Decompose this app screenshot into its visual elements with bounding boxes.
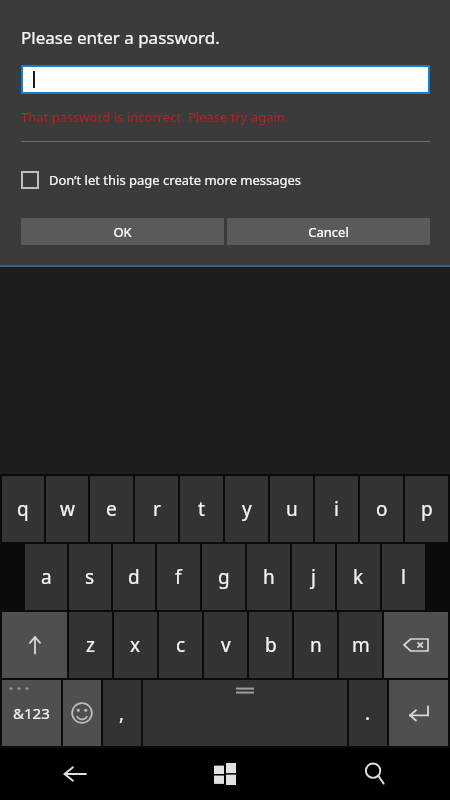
staticText: g [218,564,230,590]
button[interactable]: j [292,544,335,610]
button[interactable]: s [69,544,111,610]
staticText: p [421,496,433,522]
staticText: That password is incorrect. Please try a… [21,108,289,126]
button[interactable]: i [315,476,358,542]
staticText: OK [113,223,132,241]
button[interactable]: c [159,612,202,678]
staticText: k [353,564,364,590]
button[interactable]: Shift [2,612,67,678]
staticText: s [85,564,95,590]
button[interactable]: Back [0,748,150,800]
staticText: . [365,700,371,726]
staticText: u [286,496,298,522]
staticText: y [242,496,252,522]
button[interactable]: d [113,544,155,610]
button[interactable]: w [46,476,88,542]
staticText: r [153,496,161,522]
button[interactable]: , [103,680,141,746]
button[interactable]: Password field [21,65,430,94]
staticText: q [17,496,29,522]
button[interactable]: f [157,544,200,610]
staticText: Please enter a password. [21,26,220,49]
staticText: , [119,700,125,726]
button[interactable]: z [69,612,112,678]
staticText: a [41,564,52,590]
button[interactable]: h [247,544,290,610]
button[interactable]: v [204,612,247,678]
button[interactable]: Space [143,680,347,746]
staticText: f [175,564,182,590]
staticText: w [60,496,75,522]
button[interactable]: a [25,544,67,610]
staticText: j [311,564,316,590]
staticText: Don’t let this page create more messages [49,171,302,189]
staticText: Cancel [308,223,349,241]
button[interactable]: q [2,476,44,542]
staticText: h [263,564,275,590]
staticText: t [198,496,205,522]
staticText: i [334,496,339,522]
button[interactable]: Don’t let this page create more messages [21,167,302,193]
staticText: l [401,564,406,590]
staticText: b [265,632,277,658]
button[interactable]: Enter [389,680,448,746]
button[interactable]: m [339,612,382,678]
staticText: c [176,632,186,658]
staticText: e [106,496,117,522]
button[interactable]: Backspace [384,612,448,678]
button[interactable]: Start [150,748,300,800]
staticText: o [376,496,388,522]
staticText: n [310,632,322,658]
staticText: z [86,632,95,658]
button[interactable]: . [349,680,387,746]
button[interactable]: b [249,612,292,678]
staticText: x [130,632,141,658]
button[interactable]: k [337,544,380,610]
button[interactable]: Cancel [227,218,430,245]
button[interactable]: y [225,476,268,542]
button[interactable]: n [294,612,337,678]
button[interactable]: t [180,476,223,542]
button[interactable]: Emoji [63,680,101,746]
button[interactable]: r [135,476,178,542]
button[interactable]: e [90,476,133,542]
button[interactable]: Search [300,748,450,800]
button[interactable]: u [270,476,313,542]
button[interactable]: l [382,544,425,610]
staticText: &123 [13,703,50,723]
staticText: m [352,632,370,658]
button[interactable]: p [405,476,448,542]
button[interactable]: OK [21,218,224,245]
button[interactable]: Symbols [2,680,61,746]
button[interactable]: o [360,476,403,542]
staticText: v [221,632,231,658]
button[interactable]: x [114,612,157,678]
button[interactable]: g [202,544,245,610]
staticText: d [128,564,140,590]
